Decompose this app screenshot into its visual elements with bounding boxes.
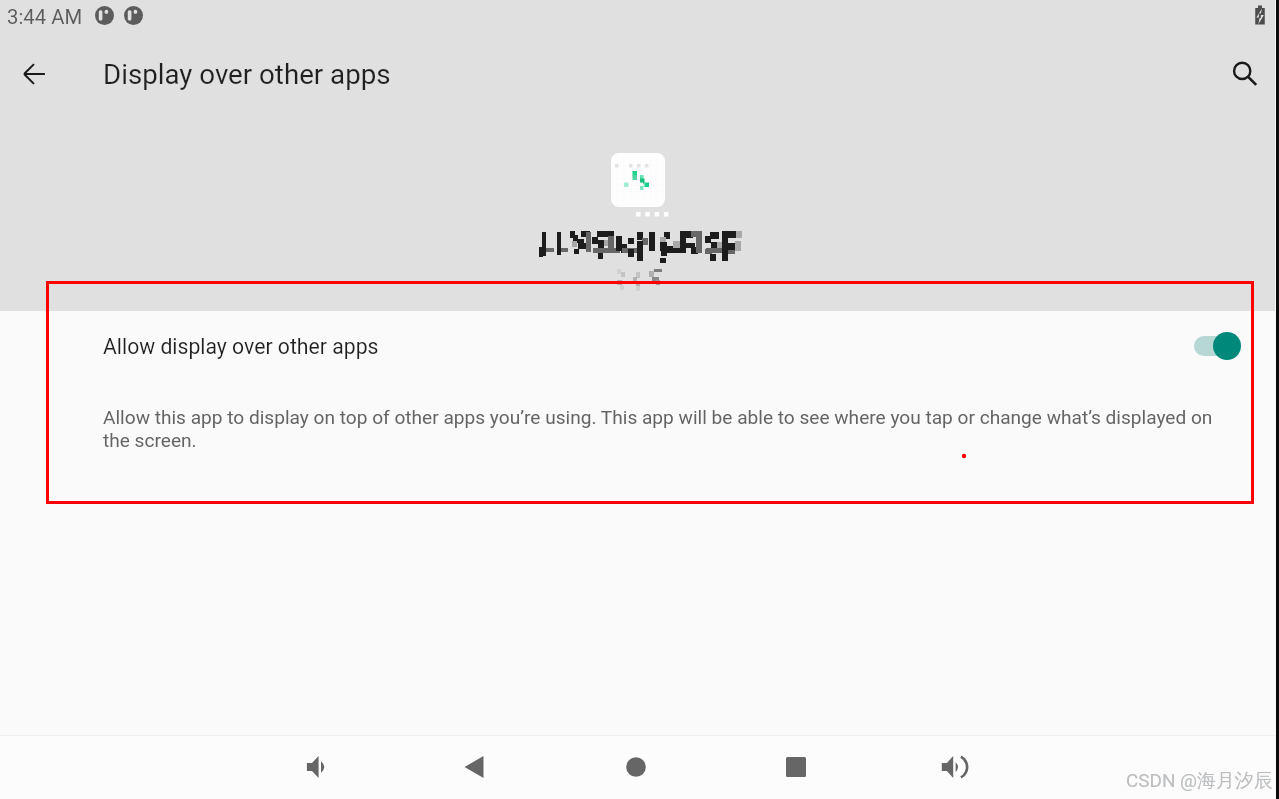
button[interactable]: Back (449, 739, 505, 795)
staticText: Allow this app to display on top of othe… (103, 406, 1213, 452)
button[interactable]: Search (1215, 44, 1275, 104)
button[interactable]: Volume up (927, 739, 983, 795)
button[interactable]: Home (608, 739, 664, 795)
button[interactable]: Recents (768, 739, 824, 795)
button[interactable]: Back (5, 44, 65, 104)
button[interactable]: Volume down (290, 739, 346, 795)
button[interactable]: Allow display over other apps (0, 321, 1279, 371)
button[interactable] (1194, 329, 1248, 363)
staticText: Allow display over other apps (103, 334, 379, 359)
staticText: CSDN @海月汐辰 (1126, 769, 1273, 793)
staticText: Display over other apps (103, 58, 391, 90)
staticText: 3:44 AM (7, 5, 83, 29)
